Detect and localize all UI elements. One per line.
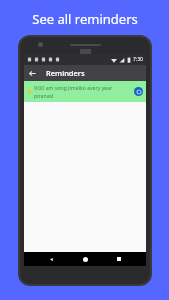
button[interactable]: Recent apps bbox=[112, 252, 126, 266]
button[interactable]: Home bbox=[78, 252, 92, 266]
button[interactable]: Back bbox=[44, 252, 58, 266]
staticText: piranasl bbox=[34, 92, 54, 99]
staticText: See all reminders bbox=[32, 10, 138, 28]
button[interactable]: 9:00 am song Jimellio every year bbox=[24, 81, 146, 102]
staticText: 9:00 am song Jimellio every year bbox=[34, 84, 113, 91]
staticText: Reminders bbox=[46, 68, 85, 78]
button[interactable]: Reminder status bbox=[134, 87, 143, 96]
staticText: 7:30 bbox=[133, 56, 143, 63]
button[interactable]: Back bbox=[24, 65, 40, 81]
